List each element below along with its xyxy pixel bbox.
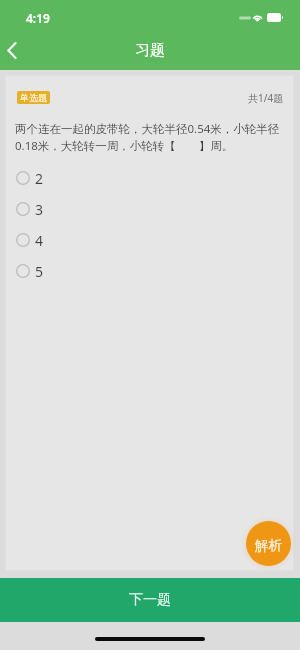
staticText: 单选题 [20,92,47,103]
staticText: 3 [35,200,44,219]
button[interactable]: 3 [13,196,286,222]
staticText: 两个连在一起的皮带轮，大轮半径0.54米，小轮半径0.18米，大轮转一周，小轮转… [15,121,294,153]
staticText: 解析 [255,537,282,554]
staticText: 4 [35,231,44,250]
button[interactable]: 下一题 [0,578,300,622]
staticText: 下一题 [129,591,171,609]
staticText: 共1/4题 [248,91,284,105]
button[interactable]: 5 [13,258,286,284]
button[interactable]: 2 [13,165,286,191]
button[interactable]: Back [0,31,24,69]
staticText: 4:19 [26,10,50,26]
button[interactable]: 解析 [246,521,291,566]
button[interactable]: 4 [13,227,286,253]
staticText: 2 [35,169,44,188]
staticText: 5 [35,262,44,281]
staticText: 习题 [135,41,165,60]
